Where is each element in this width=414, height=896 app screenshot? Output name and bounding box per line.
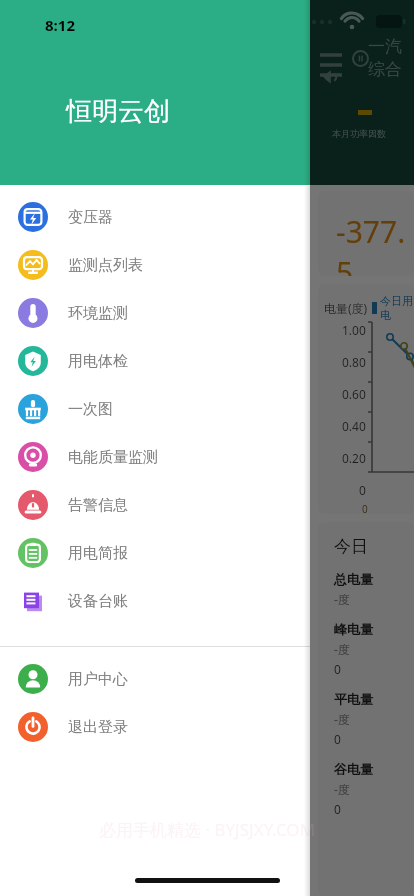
staticText: 退出登录: [68, 718, 128, 737]
staticText: 今日用电: [380, 294, 414, 322]
staticText: 0: [362, 502, 368, 514]
button[interactable]: 退出登录: [0, 703, 310, 751]
staticText: -377.5: [336, 211, 414, 276]
staticText: 0: [334, 801, 341, 817]
staticText: -度: [334, 641, 350, 657]
button[interactable]: 设备台账: [0, 577, 310, 625]
staticText: 一次图: [68, 400, 113, 419]
staticText: 今日: [334, 536, 368, 557]
staticText: 用电简报: [68, 544, 128, 563]
staticText: 环境监测: [68, 304, 128, 323]
staticText: -度: [334, 591, 350, 607]
staticText: 0.40: [342, 418, 366, 434]
button[interactable]: 用电简报: [0, 529, 310, 577]
button[interactable]: 用户中心: [0, 655, 310, 703]
staticText: 8:12: [45, 15, 75, 35]
staticText: 0.80: [342, 354, 366, 370]
button[interactable]: 一次图: [0, 385, 310, 433]
staticText: 必用手机精选 · BYJSJXY.COM: [99, 818, 316, 841]
staticText: 变压器: [68, 208, 113, 227]
staticText: 1.00: [342, 322, 366, 338]
staticText: 一汽综合: [368, 36, 414, 80]
staticText: -度: [334, 711, 350, 727]
staticText: 恒明云创: [66, 95, 170, 128]
staticText: 用户中心: [68, 670, 128, 689]
staticText: 平电量: [334, 691, 373, 707]
staticText: 0.60: [342, 386, 366, 402]
staticText: 告警信息: [68, 496, 128, 515]
button[interactable]: 电能质量监测: [0, 433, 310, 481]
staticText: 0.20: [342, 450, 366, 466]
button[interactable]: 监测点列表: [0, 241, 310, 289]
button[interactable]: 用电体检: [0, 337, 310, 385]
staticText: 用电体检: [68, 352, 128, 371]
staticText: 谷电量: [334, 761, 373, 777]
staticText: 峰电量: [334, 621, 373, 637]
staticText: 电量(度): [324, 300, 368, 316]
button[interactable]: 变压器: [0, 193, 310, 241]
staticText: 本月功率因数: [332, 128, 386, 139]
staticText: 总电量: [334, 571, 373, 587]
staticText: 0: [334, 661, 341, 677]
staticText: 监测点列表: [68, 256, 143, 275]
button[interactable]: 告警信息: [0, 481, 310, 529]
staticText: 0: [334, 731, 341, 747]
staticText: 设备台账: [68, 592, 128, 611]
staticText: 0: [359, 482, 366, 498]
staticText: 电能质量监测: [68, 448, 158, 467]
staticText: -度: [334, 781, 350, 797]
button[interactable]: 环境监测: [0, 289, 310, 337]
